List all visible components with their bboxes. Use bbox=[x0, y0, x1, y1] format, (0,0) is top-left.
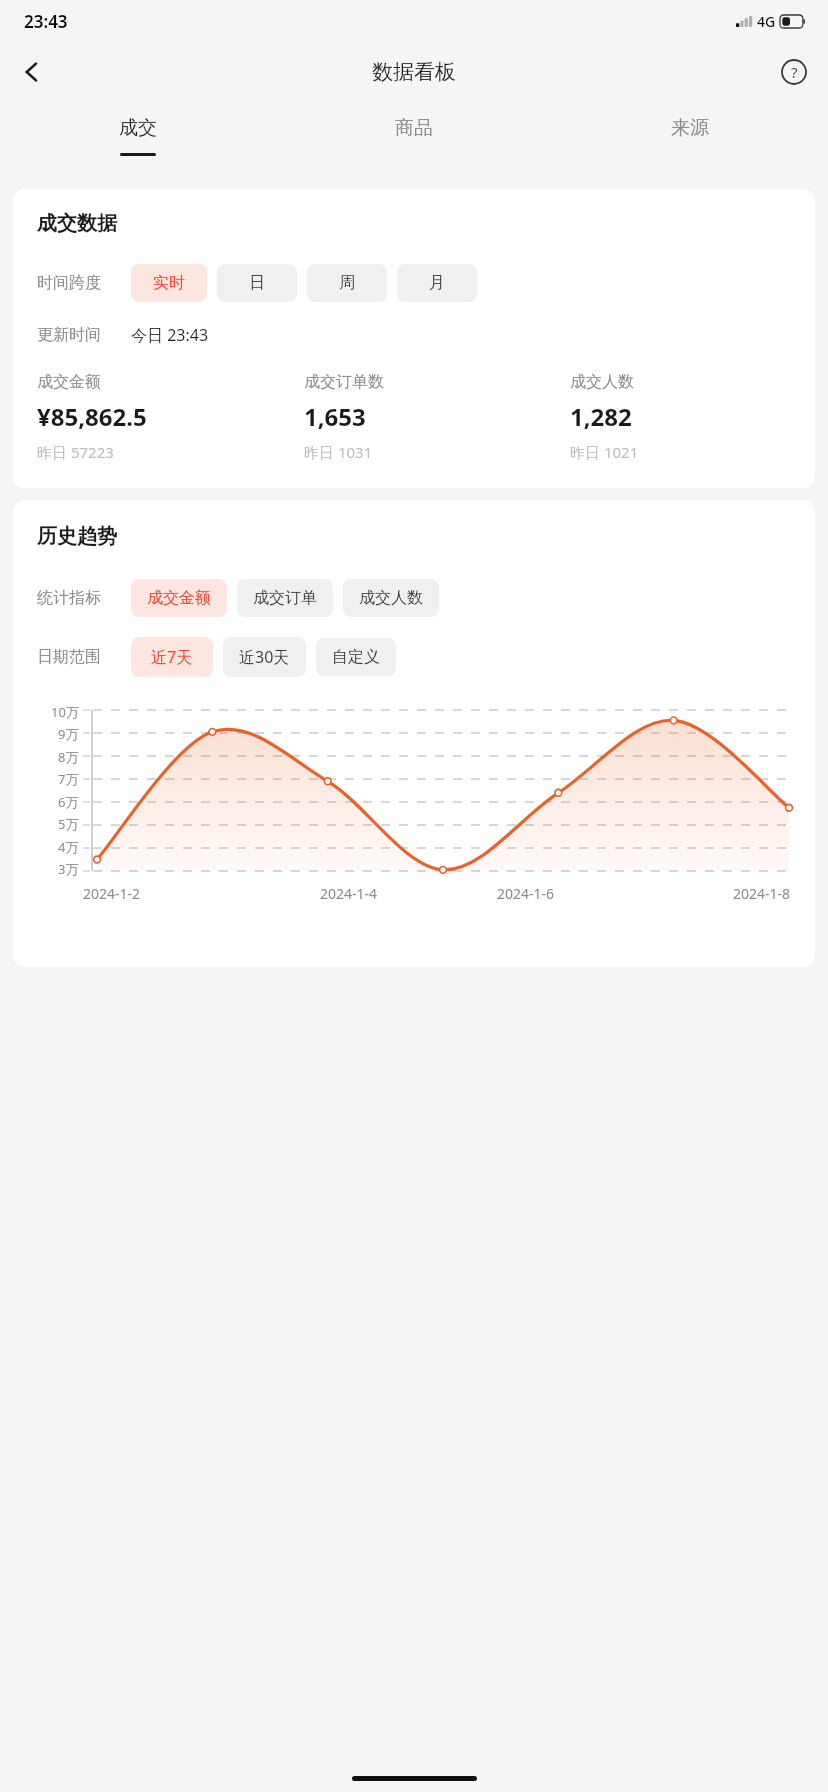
staticText: 实时 bbox=[153, 273, 185, 293]
staticText: 自定义 bbox=[332, 647, 380, 667]
staticText: 历史趋势 bbox=[37, 524, 117, 549]
button[interactable]: 近7天 bbox=[131, 637, 213, 677]
staticText: 23:43 bbox=[24, 10, 68, 33]
staticText: 成交人数 bbox=[359, 588, 423, 608]
staticText: 近7天 bbox=[151, 646, 193, 668]
staticText: 昨日 57223 bbox=[37, 442, 114, 462]
staticText: 周 bbox=[339, 273, 355, 293]
staticText: 月 bbox=[429, 273, 445, 293]
staticText: 成交 bbox=[119, 116, 157, 140]
staticText: 更新时间 bbox=[37, 325, 119, 345]
staticText: 9万 bbox=[58, 725, 79, 743]
staticText: 时间跨度 bbox=[37, 273, 119, 293]
staticText: ¥85,862.5 bbox=[37, 400, 147, 433]
staticText: 成交订单 bbox=[253, 588, 317, 608]
staticText: 4G bbox=[757, 12, 776, 31]
staticText: 来源 bbox=[671, 116, 709, 140]
button[interactable]: 商品 bbox=[276, 102, 552, 177]
button[interactable]: 成交 bbox=[0, 102, 276, 177]
staticText: 2024-1-8 bbox=[733, 884, 791, 903]
button[interactable]: 来源 bbox=[552, 102, 828, 177]
staticText: 10万 bbox=[51, 703, 79, 721]
staticText: 6万 bbox=[58, 793, 79, 811]
staticText: 昨日 1021 bbox=[570, 442, 639, 462]
staticText: 今日 23:43 bbox=[131, 324, 209, 346]
staticText: 商品 bbox=[395, 116, 433, 140]
staticText: 1,653 bbox=[304, 400, 366, 433]
staticText: 成交金额 bbox=[147, 588, 211, 608]
staticText: ? bbox=[791, 62, 798, 82]
button[interactable]: 近30天 bbox=[223, 637, 306, 677]
button[interactable]: 成交订单 bbox=[237, 579, 333, 617]
staticText: 1,282 bbox=[570, 400, 632, 433]
staticText: 3万 bbox=[58, 860, 79, 878]
button[interactable]: 周 bbox=[307, 264, 387, 302]
staticText: 7万 bbox=[58, 770, 79, 788]
staticText: 8万 bbox=[58, 748, 79, 766]
staticText: 昨日 1031 bbox=[304, 442, 373, 462]
staticText: 近30天 bbox=[239, 646, 290, 668]
staticText: 数据看板 bbox=[372, 59, 456, 85]
staticText: 成交人数 bbox=[570, 372, 634, 392]
button[interactable]: Help bbox=[770, 48, 818, 96]
button[interactable]: 实时 bbox=[131, 264, 207, 302]
button[interactable]: Back bbox=[8, 48, 56, 96]
staticText: 成交数据 bbox=[37, 211, 117, 236]
staticText: 5万 bbox=[58, 815, 79, 833]
button[interactable]: 成交人数 bbox=[343, 579, 439, 617]
button[interactable]: 自定义 bbox=[316, 638, 396, 676]
staticText: 成交订单数 bbox=[304, 372, 384, 392]
staticText: 统计指标 bbox=[37, 588, 119, 608]
button[interactable]: 成交金额 bbox=[131, 579, 227, 617]
staticText: 4万 bbox=[58, 838, 79, 856]
staticText: 2024-1-2 bbox=[83, 884, 141, 903]
staticText: 日 bbox=[249, 273, 265, 293]
staticText: 成交金额 bbox=[37, 372, 101, 392]
staticText: 日期范围 bbox=[37, 647, 119, 667]
staticText: 2024-1-6 bbox=[497, 884, 555, 903]
button[interactable]: 日 bbox=[217, 264, 297, 302]
staticText: 2024-1-4 bbox=[320, 884, 378, 903]
button[interactable]: 月 bbox=[397, 264, 477, 302]
